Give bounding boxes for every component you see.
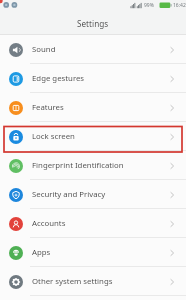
staticText: Features (32, 102, 64, 113)
staticText: 16:42 (173, 2, 186, 9)
staticText: Sound (32, 44, 56, 55)
button[interactable]: Apps (0, 238, 186, 267)
button[interactable]: Features (0, 93, 186, 122)
button[interactable]: Fingerprint Identification (0, 151, 186, 180)
staticText: Fingerprint Identification (32, 160, 124, 171)
staticText: Lock screen (32, 131, 75, 142)
staticText: Security and Privacy (32, 189, 106, 200)
button[interactable]: Accounts (0, 209, 186, 238)
staticText: 99% (144, 2, 154, 9)
button[interactable]: Lock screen (0, 122, 186, 151)
staticText: Edge gestures (32, 73, 85, 84)
staticText: Apps (32, 247, 51, 258)
button[interactable]: Other system settings (0, 267, 186, 296)
button[interactable]: Edge gestures (0, 64, 186, 93)
staticText: Other system settings (32, 276, 113, 287)
staticText: Accounts (32, 218, 66, 229)
button[interactable]: Sound (0, 35, 186, 64)
button[interactable]: Security and Privacy (0, 180, 186, 209)
staticText: Settings (77, 18, 109, 29)
